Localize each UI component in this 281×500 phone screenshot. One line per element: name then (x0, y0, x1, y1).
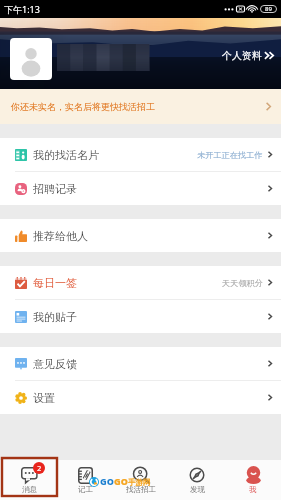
staticText: 个人资料 (222, 49, 262, 62)
staticText: 未开工正在找工作 (197, 150, 263, 160)
button[interactable]: 我的找活名片 (0, 138, 281, 171)
staticText: 设置 (33, 391, 55, 405)
staticText: 推荐给他人 (33, 229, 88, 243)
other: 消息 (21, 467, 38, 483)
button[interactable]: 找活招工 (113, 460, 169, 500)
staticText: 我的贴子 (33, 310, 77, 324)
staticText: 每日一签 (33, 276, 77, 290)
button[interactable]: 每日一签 (0, 266, 281, 299)
button[interactable]: 招聘记录 (0, 172, 281, 205)
other: 找活招工 (133, 467, 150, 484)
staticText: 意见反馈 (33, 357, 77, 371)
button[interactable]: 设置 (0, 381, 281, 414)
staticText: GO (100, 475, 114, 487)
staticText: 找活招工 (126, 485, 156, 494)
button[interactable]: 记工 (57, 460, 113, 500)
button[interactable]: 消息 (0, 460, 57, 500)
button[interactable]: 我 (225, 460, 281, 500)
staticText: 我 (249, 485, 257, 494)
button[interactable]: 推荐给他人 (0, 219, 281, 252)
other: 发现 (189, 467, 205, 483)
staticText: 你还未实名，实名后将更快找活招工 (11, 101, 155, 112)
staticText: GO (114, 475, 128, 487)
staticText: 发现 (190, 485, 205, 494)
other: 我 (246, 467, 261, 483)
staticText: 我的找活名片 (33, 148, 99, 162)
button[interactable] (10, 38, 52, 80)
staticText: 89 (265, 5, 272, 13)
staticText: 天天领积分 (222, 278, 263, 288)
button[interactable]: 我的贴子 (0, 300, 281, 333)
staticText: 下午1:13 (4, 3, 40, 15)
staticText: 消息 (22, 485, 37, 494)
button[interactable]: 意见反馈 (0, 347, 281, 380)
staticText: 记工 (78, 485, 93, 494)
button[interactable]: 你还未实名，实名后将更快找活招工 (0, 89, 281, 124)
button[interactable]: 个人资料 (214, 45, 281, 66)
other: 记工 (78, 467, 93, 484)
staticText: 招聘记录 (33, 182, 77, 196)
staticText: 手游网 (128, 478, 151, 487)
staticText: 2 (37, 463, 42, 473)
button[interactable]: 发现 (169, 460, 225, 500)
